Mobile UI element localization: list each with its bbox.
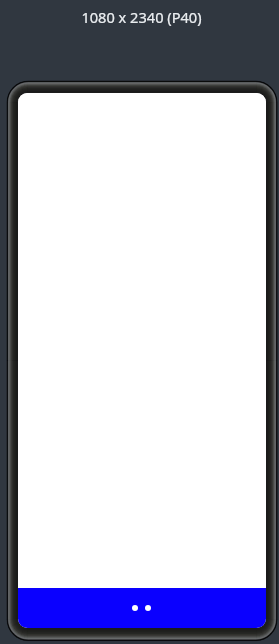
staticText: 1080 x 2340 (P40): [2, 7, 279, 27]
button[interactable]: Page one: [132, 605, 138, 611]
button[interactable]: Page two: [145, 605, 151, 611]
